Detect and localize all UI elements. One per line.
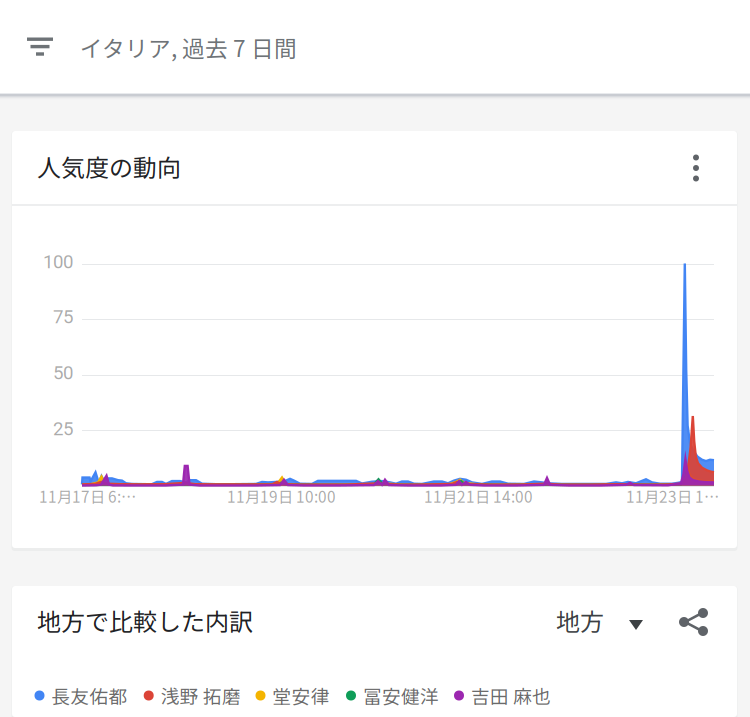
staticText: 冨安健洋 [363,682,439,709]
button[interactable]: イタリア, 過去 7 日間 [0,0,750,94]
staticText: 11月23日 1… [626,485,719,507]
staticText: 75 [53,306,73,328]
staticText: 25 [53,418,73,440]
staticText: 11月17日 6:… [39,485,136,507]
staticText: 人気度の動向 [37,149,181,184]
staticText: 浅野 拓磨 [161,682,241,709]
staticText: 吉田 麻也 [471,682,551,709]
button[interactable]: 地方 [545,594,655,648]
staticText: 50 [53,362,73,384]
button[interactable]: その他のオプション [668,140,724,196]
staticText: 11月21日 14:00 [424,485,533,507]
staticText: 100 [43,251,73,273]
staticText: 堂安律 [272,682,329,709]
button[interactable]: 共有 [666,595,722,649]
staticText: イタリア, 過去 7 日間 [80,31,297,63]
staticText: 地方で比較した内訳 [37,603,253,638]
staticText: 長友佑都 [51,682,127,709]
staticText: 11月19日 10:00 [227,485,336,507]
staticText: 地方 [556,603,604,638]
